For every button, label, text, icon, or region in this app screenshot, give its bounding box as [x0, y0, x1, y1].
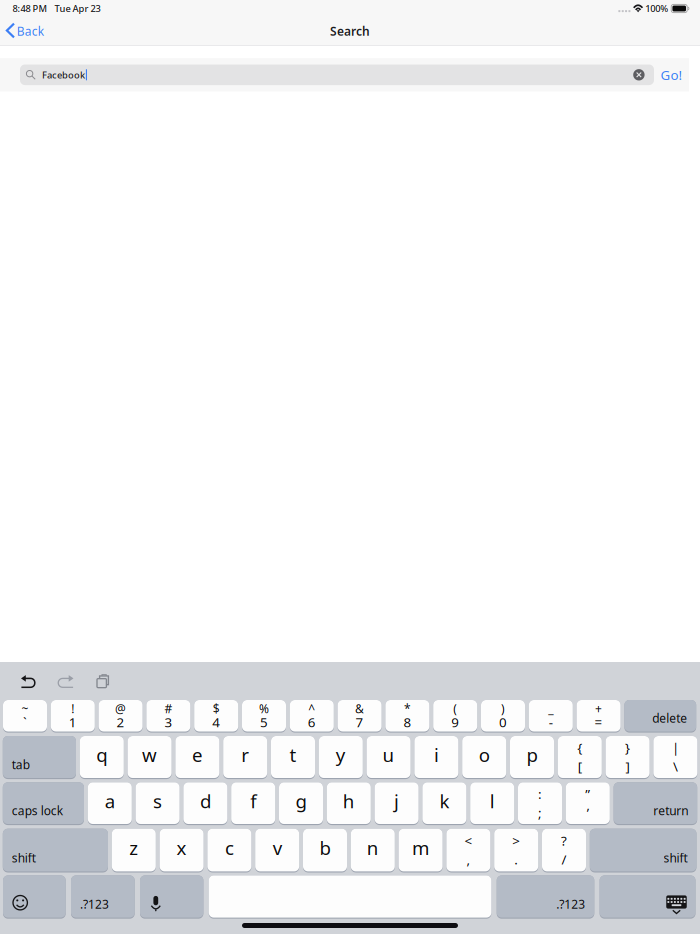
staticText: i — [434, 742, 439, 767]
staticText: @ — [115, 700, 126, 716]
button[interactable]: n — [351, 829, 395, 872]
button[interactable]: > — [494, 829, 538, 872]
staticText: 3 — [164, 713, 172, 731]
staticText: h — [343, 789, 355, 813]
button[interactable]: y — [319, 736, 363, 779]
button[interactable]: c — [207, 829, 251, 872]
button[interactable]: caps lock — [3, 782, 84, 825]
button[interactable]: q — [80, 736, 124, 779]
button[interactable]: ! — [51, 700, 95, 733]
staticText: d — [200, 789, 211, 813]
button[interactable]: ^ — [290, 700, 334, 733]
button[interactable]: t — [271, 736, 315, 779]
button[interactable]: i — [414, 736, 458, 779]
button[interactable]: ? — [542, 829, 586, 872]
staticText: shift — [663, 850, 687, 866]
button[interactable]: b — [303, 829, 347, 872]
button[interactable]: Dictate — [140, 875, 203, 919]
button[interactable]: space — [209, 875, 491, 919]
button[interactable]: r — [223, 736, 267, 779]
button[interactable]: & — [338, 700, 382, 733]
button[interactable]: .?123 — [71, 875, 135, 919]
button[interactable]: z — [112, 829, 156, 872]
button[interactable]: Redo — [58, 674, 74, 688]
button[interactable]: # — [146, 700, 190, 733]
staticText: .?123 — [80, 896, 109, 912]
button[interactable]: g — [279, 782, 323, 825]
staticText: b — [319, 835, 330, 860]
staticText: ’ — [587, 804, 589, 821]
staticText: } — [625, 739, 630, 756]
button[interactable]: Undo — [20, 674, 36, 688]
button[interactable]: ) — [481, 700, 525, 733]
button[interactable]: ( — [433, 700, 477, 733]
button[interactable]: s — [136, 782, 180, 825]
staticText: ] — [626, 757, 630, 775]
staticText: , — [466, 851, 470, 868]
button[interactable]: | — [653, 736, 697, 779]
button[interactable]: Paste — [97, 674, 110, 688]
staticText: { — [577, 739, 582, 756]
button[interactable]: : — [518, 782, 562, 825]
staticText: n — [367, 835, 379, 860]
button[interactable]: f — [231, 782, 275, 825]
staticText: t — [289, 742, 296, 767]
staticText: Tue Apr 23 — [54, 2, 100, 15]
button[interactable]: h — [327, 782, 371, 825]
button[interactable]: shift — [3, 829, 108, 872]
staticText: 5 — [260, 713, 268, 731]
button[interactable]: Facebook — [20, 64, 654, 85]
staticText: = — [595, 713, 603, 731]
button[interactable]: ~ — [3, 700, 47, 733]
staticText: o — [479, 742, 490, 767]
staticText: 8 — [403, 713, 411, 731]
button[interactable]: ” — [566, 782, 610, 825]
button[interactable]: e — [175, 736, 219, 779]
staticText: Back — [17, 23, 44, 39]
staticText: r — [241, 742, 249, 767]
staticText: caps lock — [12, 803, 63, 818]
staticText: ` — [23, 713, 27, 731]
staticText: m — [412, 835, 429, 860]
button[interactable]: .?123 — [497, 875, 594, 919]
button[interactable]: v — [255, 829, 299, 872]
button[interactable]: x — [160, 829, 204, 872]
button[interactable]: Emoji — [3, 875, 66, 919]
button[interactable]: u — [367, 736, 411, 779]
button[interactable]: * — [385, 700, 429, 733]
button[interactable]: delete — [624, 700, 696, 733]
button[interactable]: w — [128, 736, 172, 779]
staticText: y — [336, 742, 346, 767]
button[interactable]: d — [183, 782, 227, 825]
button[interactable]: Go! — [654, 63, 689, 87]
button[interactable]: m — [399, 829, 443, 872]
button[interactable]: Hide keyboard — [600, 875, 695, 919]
button[interactable]: tab — [3, 736, 76, 779]
staticText: ; — [538, 804, 542, 821]
staticText: 100% — [645, 2, 668, 15]
button[interactable]: _ — [529, 700, 573, 733]
button[interactable]: o — [462, 736, 506, 779]
button[interactable]: k — [422, 782, 466, 825]
button[interactable]: shift — [590, 829, 696, 872]
button[interactable]: % — [242, 700, 286, 733]
button[interactable]: Back — [0, 17, 52, 45]
button[interactable]: @ — [99, 700, 143, 733]
staticText: ! — [71, 700, 74, 716]
button[interactable]: { — [558, 736, 602, 779]
button[interactable]: } — [606, 736, 650, 779]
staticText: [ — [578, 757, 582, 775]
staticText: return — [653, 803, 688, 818]
staticText: w — [142, 742, 157, 767]
staticText: x — [177, 835, 187, 860]
button[interactable]: + — [577, 700, 621, 733]
button[interactable]: < — [446, 829, 490, 872]
button[interactable]: p — [510, 736, 554, 779]
button[interactable]: l — [470, 782, 514, 825]
button[interactable]: j — [375, 782, 419, 825]
staticText: - — [549, 713, 553, 731]
button[interactable]: $ — [194, 700, 238, 733]
button[interactable]: a — [88, 782, 132, 825]
button[interactable]: return — [614, 782, 697, 825]
staticText: 4 — [212, 713, 220, 731]
